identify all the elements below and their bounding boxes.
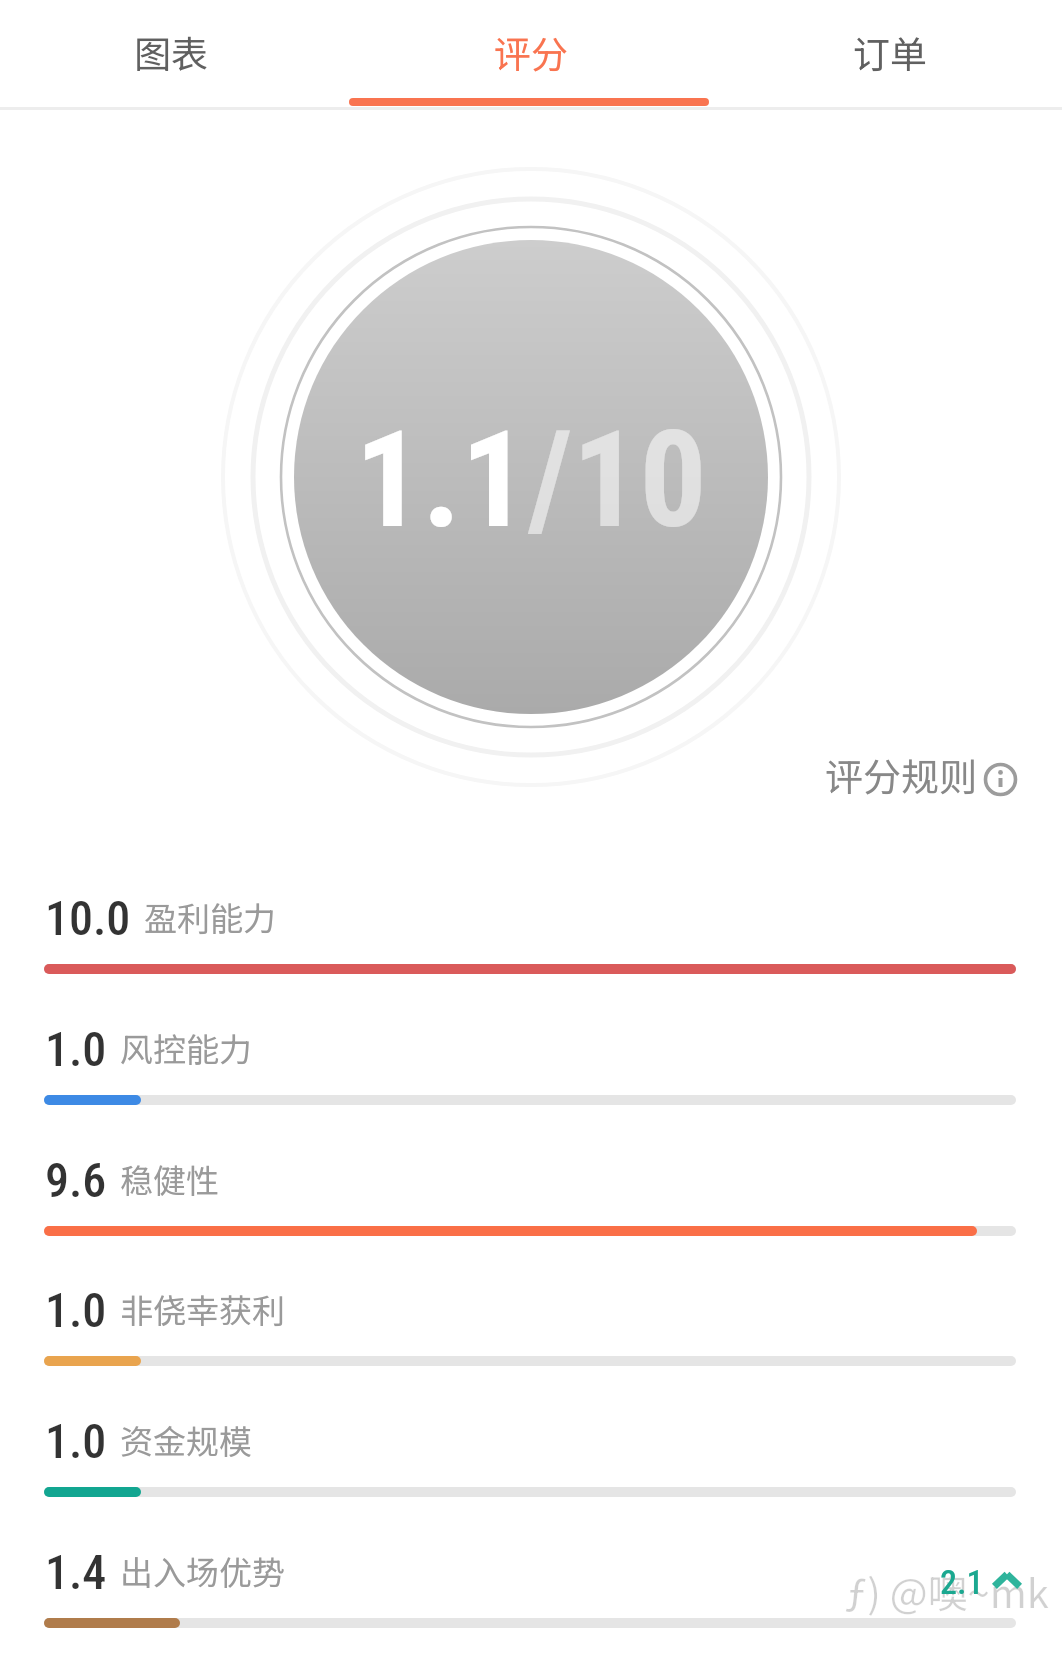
button[interactable]: 10.0 xyxy=(0,890,1062,974)
staticText: 风控能力 xyxy=(120,1024,252,1072)
button[interactable]: 图表 xyxy=(0,0,348,106)
staticText: 2.1 xyxy=(940,1562,984,1602)
button[interactable]: 1.0 xyxy=(0,1021,1062,1105)
staticText: 订单 xyxy=(853,25,927,79)
button[interactable]: 订单 xyxy=(713,0,1062,106)
staticText: 出入场优势 xyxy=(120,1547,285,1595)
staticText: 1.1/10 xyxy=(355,403,707,559)
staticText: 评分 xyxy=(494,25,568,79)
button[interactable]: 2.1 上涨 xyxy=(930,1550,1034,1608)
staticText: 9.6 xyxy=(45,1152,107,1202)
staticText: 1.0 xyxy=(45,1021,107,1071)
staticText: 资金规模 xyxy=(120,1416,252,1464)
staticText: 稳健性 xyxy=(120,1155,219,1203)
staticText: 评分规则 xyxy=(825,747,978,802)
button[interactable]: 1.0 xyxy=(0,1282,1062,1366)
staticText: 10.0 xyxy=(45,890,131,940)
button[interactable]: 9.6 xyxy=(0,1152,1062,1236)
staticText: 盈利能力 xyxy=(144,893,276,941)
staticText: 图表 xyxy=(134,25,208,79)
staticText: 1.0 xyxy=(45,1282,107,1332)
button[interactable]: 评分规则 xyxy=(800,740,1040,816)
button[interactable]: 评分 xyxy=(354,0,708,106)
button[interactable]: 1.4 xyxy=(0,1544,1062,1628)
button[interactable]: 1.0 xyxy=(0,1413,1062,1497)
staticText: 非侥幸获利 xyxy=(120,1285,285,1333)
staticText: 1.4 xyxy=(45,1544,107,1594)
staticText: ƒ) @噢~mk xyxy=(845,1562,1049,1620)
staticText: 1.0 xyxy=(45,1413,107,1463)
